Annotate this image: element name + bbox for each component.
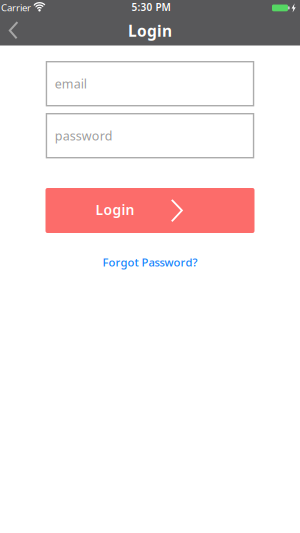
staticText: password bbox=[55, 127, 113, 144]
staticText: Carrier bbox=[1, 1, 31, 14]
staticText: Login bbox=[95, 200, 134, 219]
staticText: Forgot Password? bbox=[102, 254, 197, 270]
staticText: Login bbox=[128, 20, 172, 41]
button[interactable]: Login bbox=[45, 188, 254, 233]
button[interactable] bbox=[1, 19, 27, 42]
button[interactable]: Forgot Password? bbox=[102, 254, 197, 270]
staticText: 5:30 PM bbox=[131, 0, 170, 14]
button[interactable]: email bbox=[46, 61, 254, 106]
staticText: email bbox=[55, 75, 87, 92]
button[interactable]: password bbox=[46, 113, 254, 158]
